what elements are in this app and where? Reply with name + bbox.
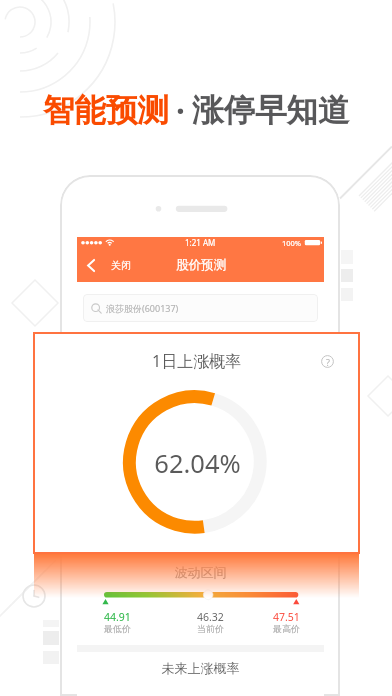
staticText: 47.51 — [273, 610, 300, 624]
staticText: 股价预测 — [176, 257, 226, 273]
staticText: ? — [326, 356, 330, 368]
button[interactable]: 浪莎股份(600137) — [83, 294, 318, 322]
button[interactable]: 关闭 — [77, 248, 324, 282]
staticText: · — [176, 89, 185, 132]
staticText: 关闭 — [111, 259, 131, 272]
staticText: 44.91 — [104, 610, 131, 624]
staticText: 未来上涨概率 — [77, 660, 324, 676]
staticText: 1:21 AM — [185, 237, 216, 248]
staticText: 62.04% — [34, 446, 361, 481]
staticText: 智能预测 — [43, 91, 169, 131]
staticText: 波动区间 — [77, 564, 324, 580]
staticText: 46.32 — [197, 610, 224, 624]
button[interactable]: 帮助 — [321, 355, 334, 368]
staticText: 当前价 — [197, 623, 224, 634]
staticText: 最高价 — [273, 623, 300, 634]
staticText: 100% — [282, 238, 302, 248]
staticText: 1日上涨概率 — [152, 350, 242, 372]
staticText: 最低价 — [104, 623, 131, 634]
staticText: 涨停早知道 — [192, 91, 350, 131]
staticText: 浪莎股份(600137) — [106, 302, 179, 314]
